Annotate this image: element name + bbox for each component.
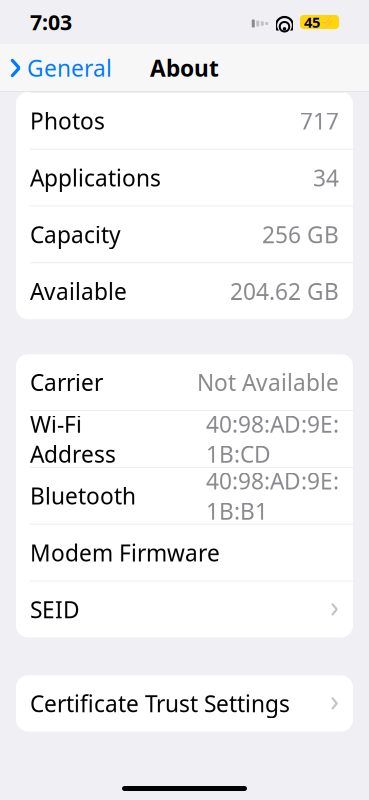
staticText: Wi-Fi Address [30, 409, 116, 469]
staticText: 40:98:AD:9E:1B:CD [206, 409, 339, 469]
button[interactable]: SEID [16, 581, 353, 637]
button[interactable]: General [0, 47, 112, 89]
staticText: 204.62 GB [230, 276, 339, 306]
button[interactable]: Carrier [16, 354, 353, 410]
button[interactable]: Certificate Trust Settings [16, 675, 353, 731]
staticText: SEID [30, 594, 80, 624]
staticText: General [27, 53, 112, 83]
button[interactable]: Modem Firmware [16, 525, 353, 581]
button[interactable]: Applications [16, 150, 353, 206]
staticText: Carrier [30, 367, 103, 397]
staticText: Bluetooth [30, 481, 136, 511]
button[interactable]: Capacity [16, 206, 353, 262]
button[interactable]: Available [16, 263, 353, 319]
staticText: About [150, 53, 219, 83]
staticText: Available [30, 276, 127, 306]
button[interactable]: Bluetooth [16, 468, 353, 524]
staticText: 34 [313, 162, 339, 193]
staticText: 45 [304, 12, 320, 32]
staticText: ⚡ [320, 15, 335, 29]
staticText: 40:98:AD:9E:1B:B1 [206, 466, 339, 526]
staticText: Modem Firmware [30, 537, 220, 568]
staticText: 256 GB [262, 219, 339, 249]
button[interactable]: Wi-Fi Address [16, 411, 353, 467]
staticText: 7:03 [30, 8, 72, 36]
button[interactable]: Photos [16, 93, 353, 149]
staticText: Applications [30, 162, 161, 193]
staticText: Capacity [30, 219, 121, 249]
staticText: Photos [30, 106, 105, 136]
staticText: Not Available [197, 367, 339, 397]
staticText: 717 [300, 106, 339, 136]
staticText: Certificate Trust Settings [30, 688, 290, 718]
